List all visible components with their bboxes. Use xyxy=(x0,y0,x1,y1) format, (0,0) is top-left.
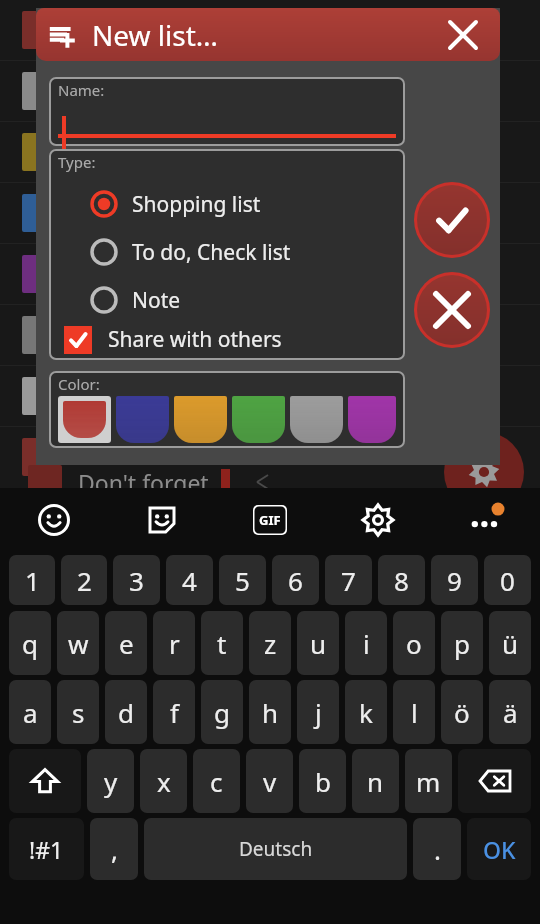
staticText: g xyxy=(214,695,230,730)
staticText: e xyxy=(119,626,134,661)
staticText: 9 xyxy=(447,563,462,598)
button[interactable]: x xyxy=(140,749,187,813)
staticText: n xyxy=(367,764,384,799)
button[interactable]: Note xyxy=(58,276,396,324)
button[interactable]: , xyxy=(90,818,138,880)
staticText: f xyxy=(170,695,179,730)
button[interactable]: v xyxy=(246,749,293,813)
staticText: Deutsch xyxy=(239,836,313,862)
button[interactable]: ü xyxy=(489,611,531,675)
staticText: p xyxy=(454,626,470,661)
staticText: 1 xyxy=(25,563,40,598)
button[interactable]: k xyxy=(345,680,387,744)
button[interactable]: e xyxy=(105,611,147,675)
staticText: !#1 xyxy=(29,834,64,865)
button[interactable]: !#1 xyxy=(9,818,84,880)
button[interactable] xyxy=(348,396,396,443)
button[interactable]: d xyxy=(105,680,147,744)
button[interactable]: y xyxy=(87,749,134,813)
button[interactable]: . xyxy=(413,818,461,880)
staticText: y xyxy=(104,764,118,799)
staticText: ü xyxy=(502,626,519,661)
button[interactable]: m xyxy=(405,749,452,813)
button[interactable]: i xyxy=(345,611,387,675)
button[interactable]: z xyxy=(249,611,291,675)
button[interactable]: Backspace xyxy=(458,749,531,813)
button[interactable]: To do, Check list xyxy=(58,228,396,276)
button[interactable]: f xyxy=(153,680,195,744)
button[interactable]: 6 xyxy=(272,555,319,605)
button[interactable]: ö xyxy=(441,680,483,744)
staticText: Shopping list xyxy=(132,190,261,219)
button[interactable]: s xyxy=(57,680,99,744)
button[interactable]: Keyboard settings xyxy=(324,488,432,552)
button[interactable]: c xyxy=(193,749,240,813)
button[interactable]: b xyxy=(299,749,346,813)
button[interactable]: q xyxy=(9,611,51,675)
button[interactable]: Stickers xyxy=(108,488,216,552)
button[interactable]: 4 xyxy=(166,555,213,605)
button[interactable]: 2 xyxy=(61,555,107,605)
button[interactable]: t xyxy=(201,611,243,675)
staticText: 0 xyxy=(500,563,515,598)
button[interactable]: Accept xyxy=(417,185,487,255)
staticText: New list… xyxy=(92,16,218,54)
staticText: w xyxy=(68,626,89,661)
staticText: Name: xyxy=(58,80,105,100)
staticText: . xyxy=(434,832,441,867)
button[interactable] xyxy=(232,396,285,443)
staticText: Don't forget xyxy=(78,467,209,498)
button[interactable]: Share with others xyxy=(58,324,396,355)
button[interactable]: 5 xyxy=(219,555,266,605)
staticText: GIF xyxy=(259,511,281,529)
button[interactable]: OK xyxy=(467,818,531,880)
button[interactable]: More options xyxy=(432,488,540,552)
staticText: j xyxy=(315,695,322,730)
staticText: Type: xyxy=(58,152,96,172)
staticText: l xyxy=(411,695,418,730)
button[interactable]: Shopping list xyxy=(58,180,396,228)
staticText: OK xyxy=(483,834,516,865)
button[interactable] xyxy=(116,396,169,443)
staticText: u xyxy=(310,626,327,661)
button[interactable]: 1 xyxy=(9,555,55,605)
staticText: To do, Check list xyxy=(132,238,291,267)
button[interactable]: u xyxy=(297,611,339,675)
button[interactable]: Cancel xyxy=(417,275,487,345)
staticText: 7 xyxy=(341,563,356,598)
button[interactable]: 8 xyxy=(378,555,425,605)
staticText: 5 xyxy=(235,563,250,598)
button[interactable]: w xyxy=(57,611,99,675)
button[interactable]: Shift xyxy=(9,749,81,813)
staticText: 6 xyxy=(288,563,303,598)
staticText: i xyxy=(363,626,370,661)
button[interactable]: r xyxy=(153,611,195,675)
staticText: k xyxy=(359,695,373,730)
button[interactable]: o xyxy=(393,611,435,675)
button[interactable]: h xyxy=(249,680,291,744)
button[interactable]: g xyxy=(201,680,243,744)
button[interactable]: Close xyxy=(440,12,486,58)
button[interactable] xyxy=(290,396,343,443)
button[interactable]: l xyxy=(393,680,435,744)
button[interactable]: 3 xyxy=(113,555,160,605)
staticText: b xyxy=(315,764,331,799)
staticText: r xyxy=(169,626,180,661)
button[interactable]: j xyxy=(297,680,339,744)
button[interactable] xyxy=(174,396,227,443)
button[interactable]: 7 xyxy=(325,555,372,605)
button[interactable]: 9 xyxy=(431,555,478,605)
button[interactable]: Settings xyxy=(444,432,524,512)
staticText: v xyxy=(263,764,277,799)
button[interactable]: Emoji xyxy=(0,488,108,552)
button[interactable]: GIF xyxy=(216,488,324,552)
button[interactable] xyxy=(63,401,106,438)
staticText: 4 xyxy=(182,563,197,598)
staticText: o xyxy=(406,626,422,661)
button[interactable]: n xyxy=(352,749,399,813)
button[interactable]: p xyxy=(441,611,483,675)
button[interactable]: 0 xyxy=(484,555,531,605)
button[interactable]: a xyxy=(9,680,51,744)
button[interactable]: Deutsch xyxy=(144,818,407,880)
button[interactable]: ä xyxy=(489,680,531,744)
